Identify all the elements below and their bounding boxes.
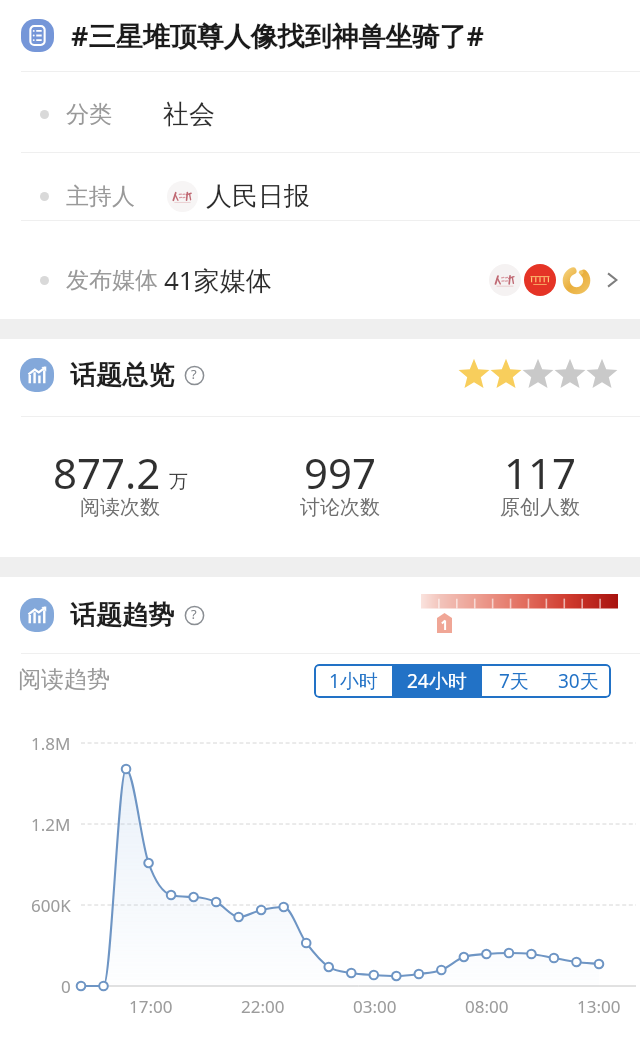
staticText: ?: [191, 605, 197, 623]
staticText: 22:00: [241, 995, 285, 1018]
button[interactable]: 30天: [545, 664, 611, 698]
button[interactable]: 7天: [482, 664, 545, 698]
staticText: 997: [304, 444, 377, 501]
staticText: 话题趋势: [70, 599, 174, 632]
staticText: ?: [191, 365, 197, 383]
staticText: 117: [504, 444, 577, 501]
staticText: 话题总览: [70, 359, 174, 392]
staticText: 600K: [31, 894, 71, 917]
staticText: 41家媒体: [164, 262, 272, 298]
staticText: 1.8M: [31, 732, 71, 755]
staticText: 1小时: [329, 668, 378, 694]
staticText: 人民日报: [206, 180, 310, 213]
button[interactable]: 查看全部媒体: [601, 269, 623, 291]
staticText: 原创人数: [500, 495, 580, 520]
button[interactable]: 997: [240, 416, 440, 557]
staticText: 30天: [558, 668, 599, 694]
button[interactable]: 877.2: [20, 416, 220, 557]
staticText: 17:00: [129, 995, 173, 1018]
button[interactable]: 117: [440, 416, 640, 557]
staticText: 13:00: [577, 995, 621, 1018]
staticText: 0: [61, 975, 71, 998]
button[interactable]: 说明: [184, 605, 204, 625]
staticText: 24小时: [407, 668, 467, 694]
staticText: 讨论次数: [300, 495, 380, 520]
staticText: 03:00: [353, 995, 397, 1018]
staticText: 万: [169, 470, 188, 494]
staticText: 主持人: [66, 182, 135, 211]
button[interactable]: 主持人: [0, 152, 640, 220]
button[interactable]: 说明: [184, 365, 204, 385]
button[interactable]: 24小时: [392, 664, 482, 698]
staticText: 7天: [499, 668, 529, 694]
staticText: 阅读趋势: [18, 665, 110, 694]
button[interactable]: 发布媒体: [0, 220, 640, 319]
button[interactable]: 分类: [0, 71, 640, 152]
staticText: 社会: [163, 98, 215, 131]
staticText: 08:00: [465, 995, 509, 1018]
button[interactable]: #三星堆顶尊人像找到神兽坐骑了#: [0, 0, 640, 71]
staticText: 分类: [66, 100, 112, 129]
staticText: 阅读次数: [80, 495, 160, 520]
staticText: 877.2: [53, 444, 161, 501]
button[interactable]: 话题总览: [0, 339, 640, 411]
staticText: 1.2M: [31, 813, 71, 836]
staticText: 发布媒体: [66, 266, 158, 295]
button[interactable]: 1小时: [314, 664, 392, 698]
staticText: #三星堆顶尊人像找到神兽坐骑了#: [71, 17, 484, 54]
